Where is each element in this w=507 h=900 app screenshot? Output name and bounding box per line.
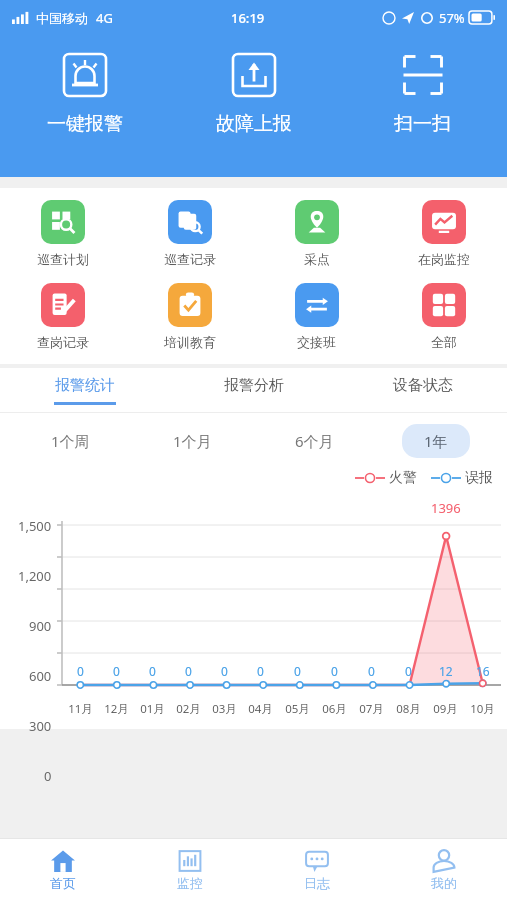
staticText: 1年 [424, 431, 448, 451]
staticText: 火警 [389, 469, 417, 487]
button[interactable]: 一键报警 [0, 35, 169, 177]
staticText: 1,500 [18, 517, 52, 535]
staticText: 600 [29, 667, 52, 685]
staticText: 07月 [359, 701, 384, 717]
staticText: 08月 [396, 701, 421, 717]
staticText: 在岗监控 [418, 251, 470, 267]
button[interactable]: 6个月 [273, 424, 356, 458]
staticText: 0 [221, 663, 228, 679]
staticText: 04月 [248, 701, 273, 717]
button[interactable]: 报警分析 [169, 368, 338, 412]
staticText: 扫一扫 [394, 112, 451, 136]
staticText: 300 [29, 717, 52, 735]
button[interactable]: 采点 [253, 196, 380, 271]
staticText: 设备状态 [393, 376, 453, 395]
button[interactable]: 1年 [402, 424, 470, 458]
staticText: 0 [405, 663, 412, 679]
staticText: 4G [96, 9, 113, 27]
staticText: 查岗记录 [37, 334, 89, 350]
staticText: 03月 [212, 701, 237, 717]
button[interactable]: 1个周 [29, 424, 112, 458]
staticText: 误报 [465, 469, 493, 487]
staticText: 1个月 [173, 431, 212, 451]
staticText: 1396 [431, 499, 461, 517]
staticText: 1个周 [51, 431, 90, 451]
staticText: 12月 [104, 701, 129, 717]
staticText: 16 [476, 663, 490, 679]
staticText: 0 [149, 663, 156, 679]
staticText: 05月 [285, 701, 310, 717]
button[interactable]: 1个月 [151, 424, 234, 458]
staticText: 12 [439, 663, 453, 679]
staticText: 6个月 [295, 431, 334, 451]
staticText: 采点 [304, 251, 330, 267]
button[interactable]: 在岗监控 [380, 196, 507, 271]
staticText: 01月 [140, 701, 165, 717]
staticText: 监控 [177, 875, 203, 891]
button[interactable]: 巡查计划 [0, 196, 126, 271]
staticText: 一键报警 [47, 112, 123, 136]
button[interactable]: 首页 [0, 839, 126, 900]
staticText: 全部 [431, 334, 457, 350]
staticText: 16:19 [231, 9, 265, 27]
button[interactable]: 全部 [380, 279, 507, 354]
button[interactable]: 日志 [253, 839, 380, 900]
staticText: 0 [44, 767, 52, 785]
staticText: 02月 [176, 701, 201, 717]
staticText: 57% [439, 9, 465, 27]
staticText: 日志 [304, 875, 330, 891]
staticText: 我的 [431, 875, 457, 891]
staticText: 巡查计划 [37, 251, 89, 267]
button[interactable]: 报警统计 [0, 368, 169, 412]
button[interactable]: 故障上报 [169, 35, 338, 177]
button[interactable]: 扫一扫 [338, 35, 507, 177]
staticText: 培训教育 [164, 334, 216, 350]
staticText: 故障上报 [216, 112, 292, 136]
staticText: 1,200 [18, 567, 52, 585]
staticText: 首页 [50, 875, 76, 891]
staticText: 11月 [68, 701, 93, 717]
button[interactable]: 设备状态 [338, 368, 507, 412]
staticText: 0 [331, 663, 338, 679]
button[interactable]: 巡查记录 [126, 196, 253, 271]
staticText: 0 [185, 663, 192, 679]
staticText: 报警分析 [224, 376, 284, 395]
staticText: 0 [294, 663, 301, 679]
staticText: 巡查记录 [164, 251, 216, 267]
staticText: 交接班 [297, 334, 336, 350]
staticText: 报警统计 [55, 376, 115, 395]
staticText: 09月 [433, 701, 458, 717]
staticText: 06月 [322, 701, 347, 717]
staticText: 0 [77, 663, 84, 679]
staticText: 0 [368, 663, 375, 679]
staticText: 10月 [470, 701, 495, 717]
button[interactable]: 培训教育 [126, 279, 253, 354]
button[interactable]: 监控 [126, 839, 253, 900]
staticText: 0 [113, 663, 120, 679]
button[interactable]: 查岗记录 [0, 279, 126, 354]
staticText: 0 [257, 663, 264, 679]
button[interactable]: 我的 [380, 839, 507, 900]
staticText: 900 [29, 617, 52, 635]
button[interactable]: 交接班 [253, 279, 380, 354]
staticText: 中国移动 [36, 10, 88, 26]
